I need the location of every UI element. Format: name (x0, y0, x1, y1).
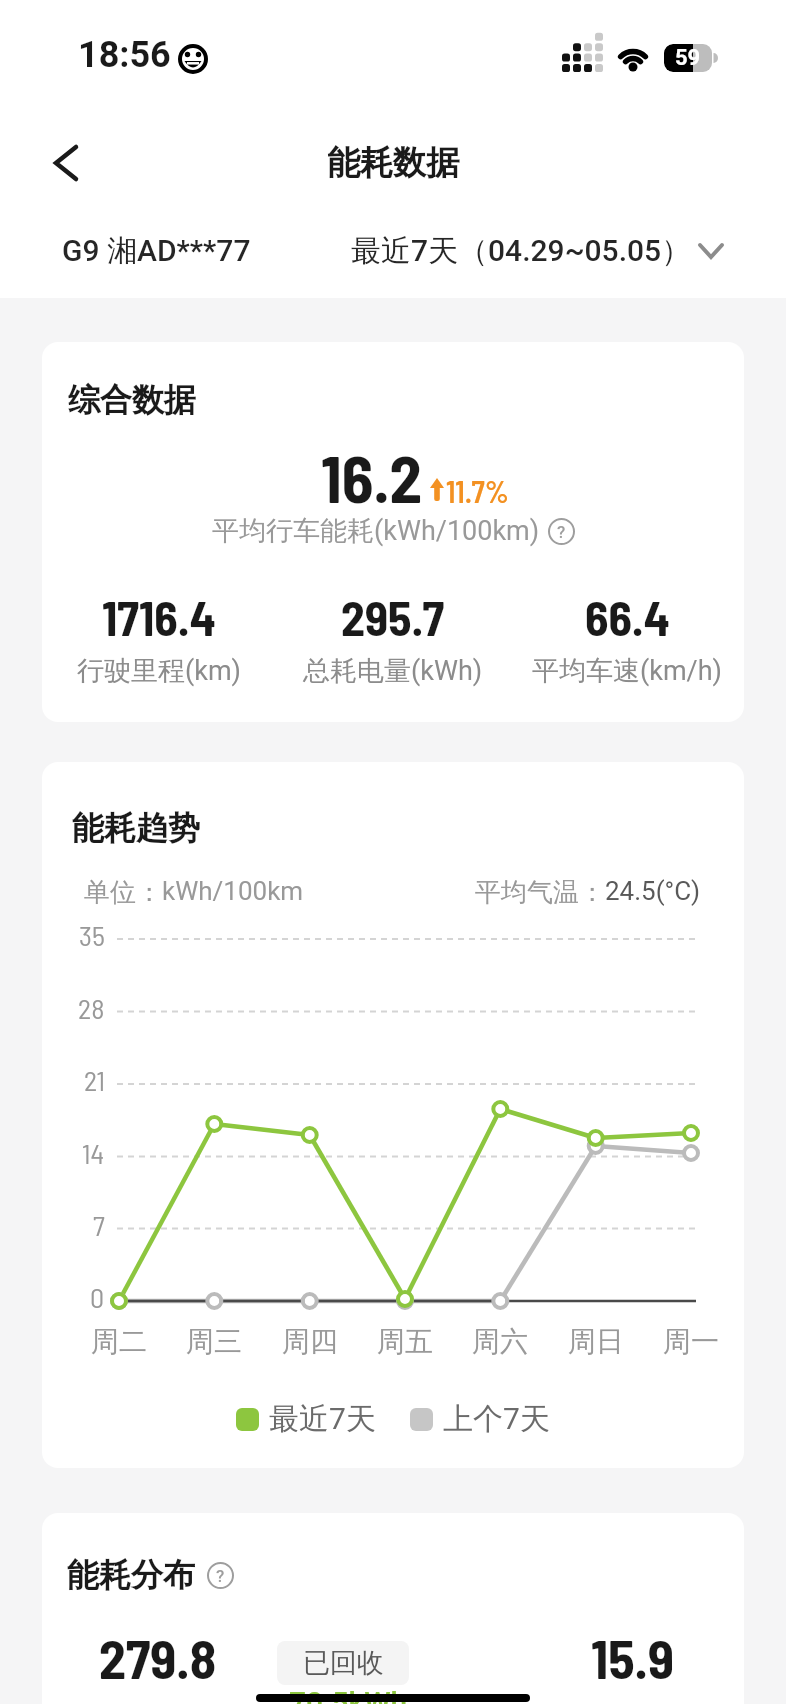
staticText: 周二 (91, 1324, 147, 1359)
staticText: 最近7天 (269, 1400, 376, 1438)
staticText: 周四 (282, 1324, 338, 1359)
staticText: 11.7% (446, 473, 509, 509)
button[interactable]: 能耗趋势 (42, 762, 744, 1468)
staticText: 70.5kWh (289, 1685, 408, 1704)
button[interactable] (410, 1408, 433, 1431)
staticText: 59 (675, 45, 701, 71)
button[interactable] (52, 144, 80, 182)
staticText: ? (216, 1566, 225, 1586)
staticText: 7 (93, 1208, 105, 1242)
staticText: 行驶里程(km) (77, 654, 242, 688)
staticText: 0 (90, 1280, 105, 1314)
staticText: 上个7天 (443, 1400, 550, 1438)
button[interactable]: G9 湘AD***77 (62, 232, 251, 270)
staticText: 平均车速(km/h) (532, 654, 723, 688)
button[interactable]: 综合数据 (42, 342, 744, 722)
staticText: kWh/100km (162, 876, 304, 906)
staticText: 15.9 (591, 1625, 674, 1690)
staticText: 16.2 (321, 438, 422, 516)
staticText: 能耗数据 (327, 142, 459, 184)
staticText: 35 (79, 918, 105, 952)
staticText: 周三 (186, 1324, 242, 1359)
staticText: 66.4 (585, 588, 670, 646)
staticText: 24.5(°C) (605, 876, 700, 906)
staticText: 周五 (377, 1324, 433, 1359)
staticText: 最近7天（04.29~05.05） (351, 232, 692, 270)
staticText: 14 (82, 1136, 105, 1170)
staticText: 28 (78, 991, 105, 1025)
staticText: ? (557, 522, 566, 542)
staticText: 单位： (84, 876, 162, 909)
button[interactable]: 最近7天（04.29~05.05） (351, 232, 724, 270)
staticText: 周一 (663, 1324, 719, 1359)
staticText: 279.8 (99, 1625, 217, 1690)
staticText: 周日 (568, 1324, 624, 1359)
staticText: 综合数据 (68, 380, 196, 420)
staticText: 已回收 (303, 1646, 384, 1680)
button[interactable] (236, 1408, 259, 1431)
staticText: 能耗分布 (67, 1555, 195, 1595)
staticText: 平均气温： (475, 876, 605, 909)
staticText: 21 (84, 1063, 105, 1097)
button[interactable]: 能耗分布 (42, 1513, 744, 1704)
staticText: 能耗趋势 (72, 808, 200, 848)
staticText: 18:56 (78, 34, 171, 76)
staticText: 平均行车能耗(kWh/100km) (212, 514, 540, 548)
staticText: 周六 (472, 1324, 528, 1359)
staticText: 295.7 (341, 588, 445, 646)
staticText: 1716.4 (102, 588, 216, 646)
staticText: 总耗电量(kWh) (303, 654, 483, 688)
